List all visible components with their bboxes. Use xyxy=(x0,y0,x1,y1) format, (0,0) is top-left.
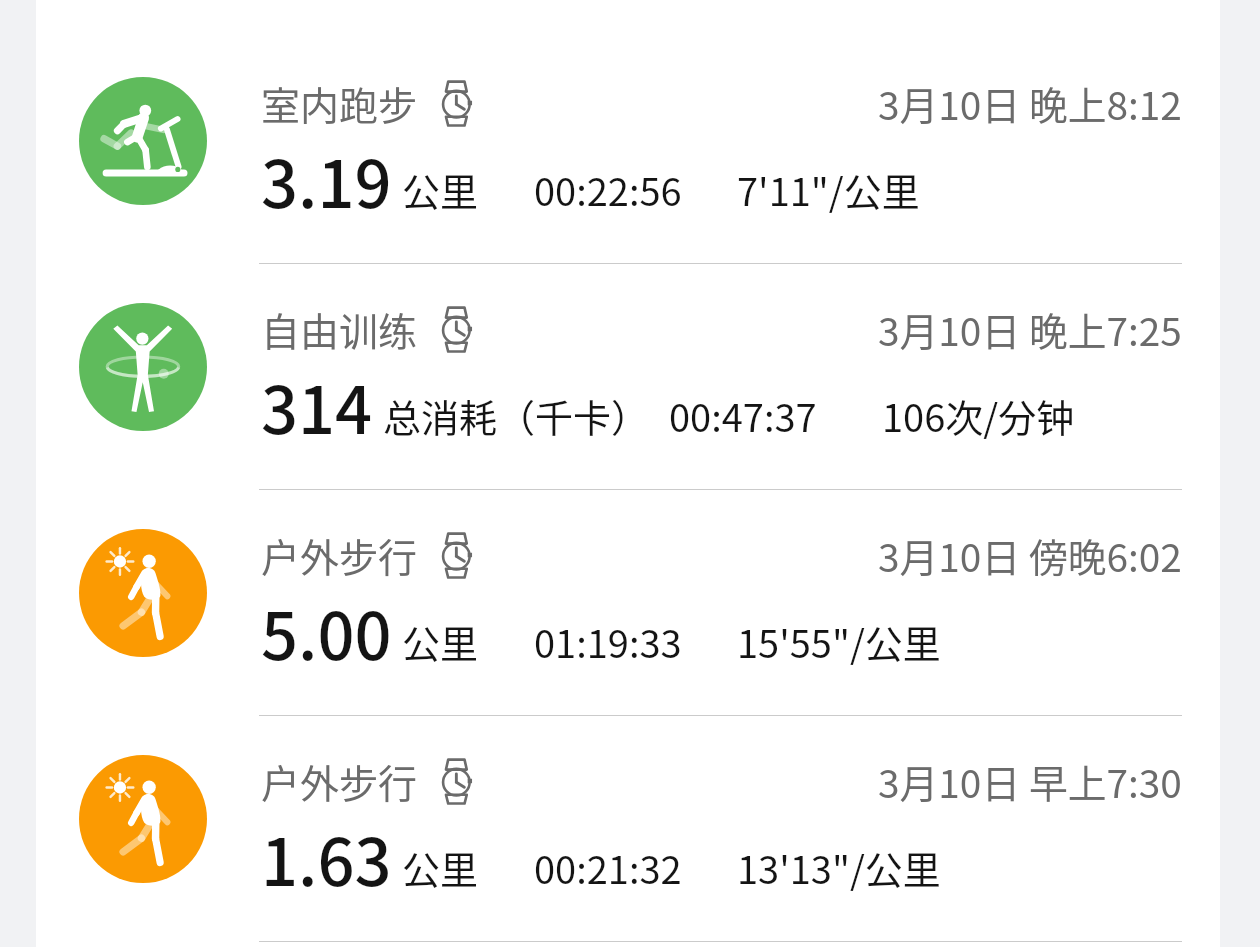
staticText: 00:22:56 xyxy=(534,162,682,217)
staticText: 3月10日 早上7:30 xyxy=(878,753,1182,809)
staticText: 3.19 xyxy=(261,133,392,227)
staticText: 314 xyxy=(261,359,373,453)
staticText: 15'55"/公里 xyxy=(737,614,941,669)
staticText: 106次/分钟 xyxy=(882,388,1075,443)
staticText: 自由训练 xyxy=(261,301,418,357)
staticText: 1.63 xyxy=(261,811,392,905)
button[interactable]: 户外步行 xyxy=(36,490,1220,716)
staticText: 5.00 xyxy=(261,585,392,679)
staticText: 公里 xyxy=(402,840,479,895)
staticText: 户外步行 xyxy=(261,527,418,583)
staticText: 公里 xyxy=(402,614,479,669)
staticText: 总消耗（千卡） xyxy=(383,388,650,443)
staticText: 3月10日 晚上7:25 xyxy=(878,301,1182,357)
staticText: 3月10日 晚上8:12 xyxy=(878,75,1182,131)
staticText: 7'11"/公里 xyxy=(737,162,920,217)
staticText: 13'13"/公里 xyxy=(737,840,941,895)
staticText: 户外步行 xyxy=(261,753,418,809)
button[interactable]: 室内跑步 xyxy=(36,38,1220,264)
other: Recorded on watch xyxy=(441,79,473,127)
staticText: 01:19:33 xyxy=(534,614,682,669)
other: Recorded on watch xyxy=(441,531,473,579)
staticText: 3月10日 傍晚6:02 xyxy=(878,527,1182,583)
button[interactable]: 户外步行 xyxy=(36,716,1220,942)
staticText: 公里 xyxy=(402,162,479,217)
staticText: 00:47:37 xyxy=(669,388,817,443)
other: Recorded on watch xyxy=(441,305,473,353)
staticText: 00:21:32 xyxy=(534,840,682,895)
button[interactable]: 自由训练 xyxy=(36,264,1220,490)
other: Recorded on watch xyxy=(441,757,473,805)
staticText: 室内跑步 xyxy=(261,75,418,131)
